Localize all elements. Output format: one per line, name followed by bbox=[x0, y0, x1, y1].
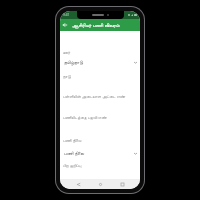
button[interactable]: தமிழ்நாடு bbox=[63, 60, 137, 65]
button[interactable]: Back bbox=[74, 180, 82, 188]
staticText: தமிழ்நாடு bbox=[64, 60, 84, 65]
staticText: பணி நிலை bbox=[64, 150, 85, 156]
button[interactable]: Back bbox=[60, 20, 70, 30]
staticText: பள்ளியின் அடையாள அட்டை எண் bbox=[63, 94, 126, 100]
staticText: பணி நிலை bbox=[63, 138, 82, 144]
staticText: நாடு bbox=[63, 75, 71, 79]
staticText: 9:41 bbox=[63, 13, 70, 17]
staticText: பணியிடத்தை பதவி எண் bbox=[63, 115, 107, 121]
button[interactable]: பணி நிலை bbox=[63, 150, 137, 156]
button[interactable]: Home bbox=[96, 180, 104, 188]
button[interactable]: Recent apps bbox=[118, 180, 126, 188]
staticText: ஊர் bbox=[63, 51, 71, 55]
staticText: ஆசிரியர் பணி விவரம் bbox=[72, 22, 120, 29]
staticText: பிற குறிப்பு bbox=[63, 163, 82, 169]
